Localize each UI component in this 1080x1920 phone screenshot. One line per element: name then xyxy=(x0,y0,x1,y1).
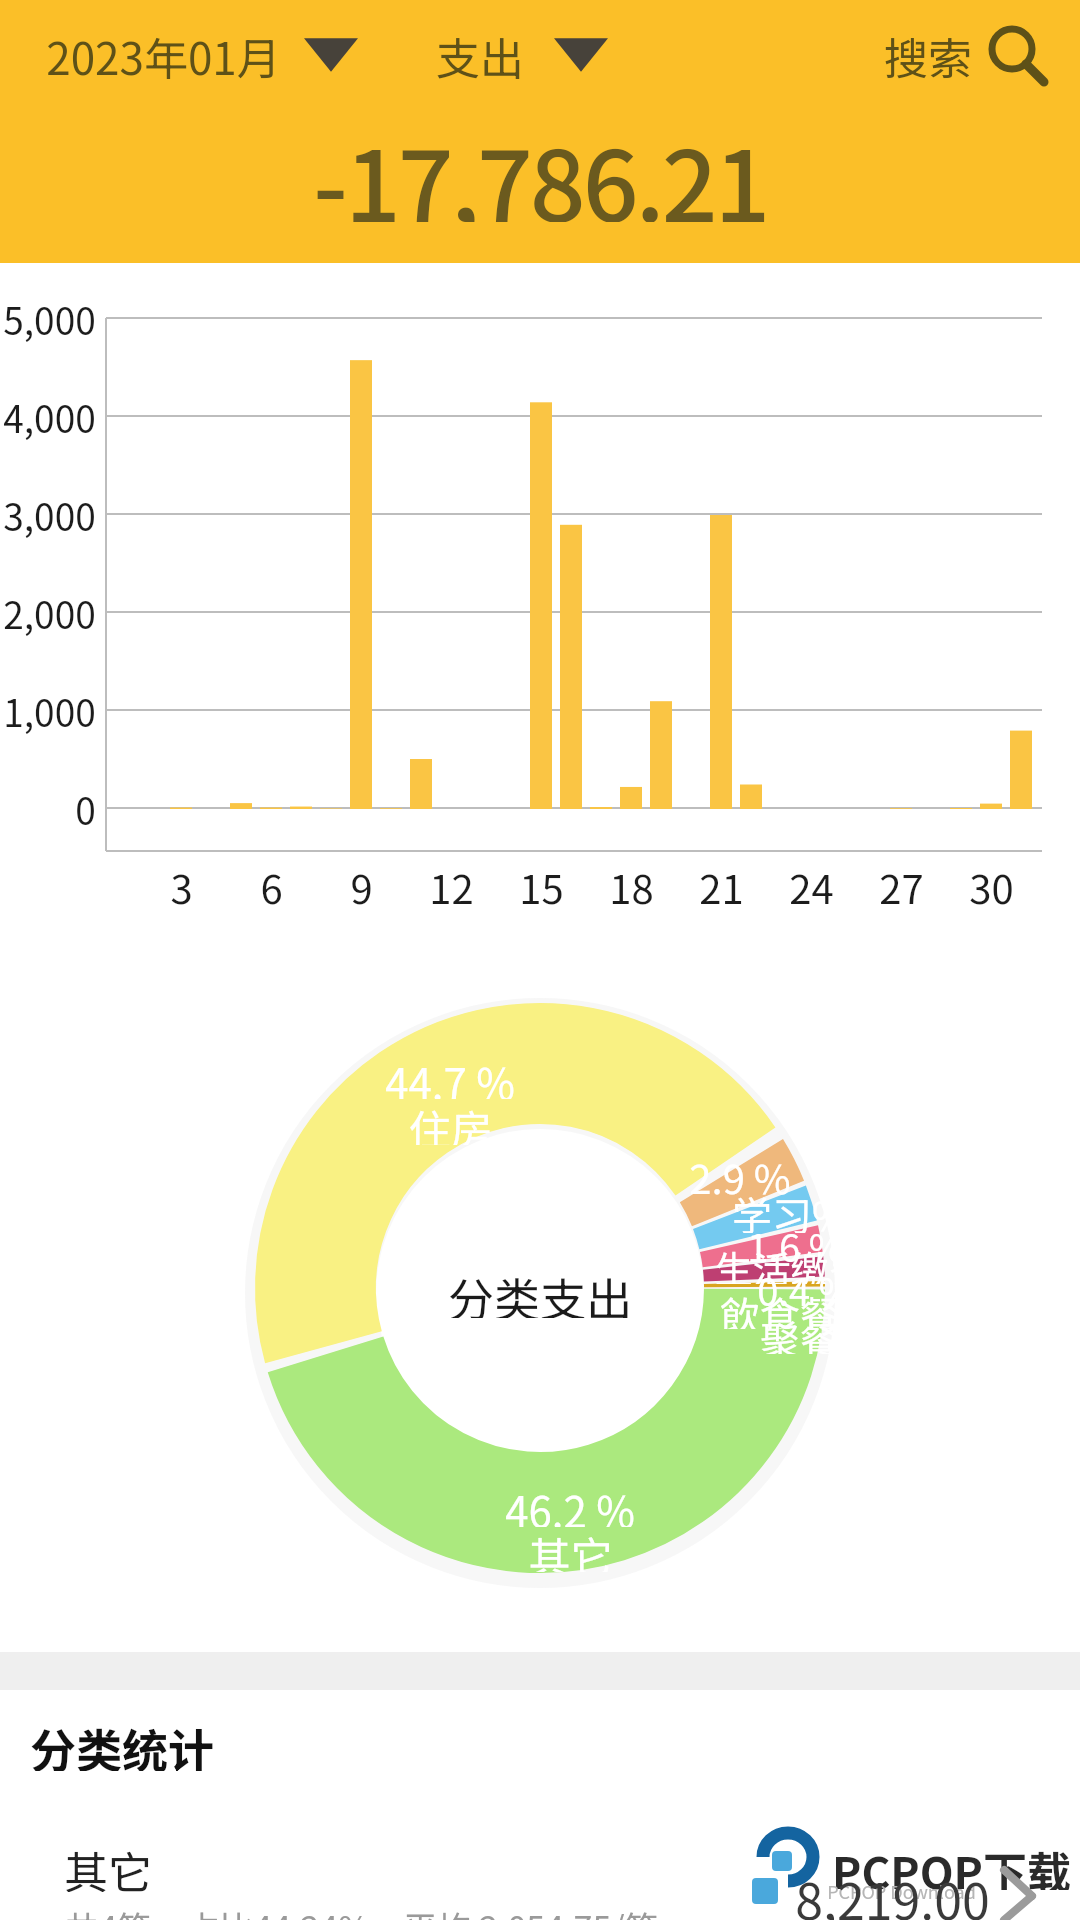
staticText: PCPOP下载 xyxy=(832,1838,1071,1890)
staticText: 6 xyxy=(260,858,283,910)
staticText: 分类支出 xyxy=(448,1264,632,1318)
staticText: 46.2 % xyxy=(505,1479,635,1527)
staticText: 其它 xyxy=(64,1838,152,1892)
staticText: 44.7 % xyxy=(385,1051,515,1099)
staticText: 2023年01月 xyxy=(46,24,281,82)
staticText: 1.6 % xyxy=(747,1218,844,1262)
staticText: 15 xyxy=(519,858,564,910)
staticText: 4,000 xyxy=(3,390,96,442)
button[interactable] xyxy=(20,22,365,84)
staticText: 27 xyxy=(879,858,924,910)
staticText: 飲食餐饮 xyxy=(720,1285,880,1329)
staticText: 共4笔，占比44.24%，平均 2,054.75/笔 xyxy=(64,1902,659,1920)
staticText: 其它 xyxy=(528,1524,613,1572)
staticText: 30 xyxy=(969,858,1014,910)
staticText: 学习% xyxy=(732,1185,849,1233)
staticText: 18 xyxy=(609,858,654,910)
staticText: 5,000 xyxy=(3,292,96,344)
staticText: 3 xyxy=(170,858,193,910)
staticText: 生活缴费 xyxy=(714,1240,867,1284)
staticText: 0 xyxy=(75,782,96,834)
staticText: 12 xyxy=(429,858,474,910)
staticText: 24 xyxy=(789,858,834,910)
staticText: 9 xyxy=(350,858,373,910)
staticText: 支出 xyxy=(436,24,524,82)
staticText: 2,000 xyxy=(3,586,96,638)
staticText: 3,000 xyxy=(3,488,96,540)
button[interactable] xyxy=(870,14,1060,90)
staticText: 住房 xyxy=(408,1097,493,1145)
staticText: 1,000 xyxy=(3,684,96,736)
staticText: -17,786.21 xyxy=(313,108,768,222)
staticText: 搜索 xyxy=(884,24,972,82)
staticText: 2.9 % xyxy=(689,1148,791,1196)
staticText: PCPOP Download xyxy=(827,1878,976,1902)
button[interactable] xyxy=(420,22,615,84)
staticText: 分类统计 xyxy=(30,1715,214,1771)
button[interactable] xyxy=(0,1810,1080,1920)
staticText: 8,219.00 xyxy=(795,1862,990,1920)
staticText: 0.4 % xyxy=(757,1262,854,1306)
staticText: 21 xyxy=(699,858,744,910)
staticText: 聚餐 xyxy=(760,1310,840,1354)
